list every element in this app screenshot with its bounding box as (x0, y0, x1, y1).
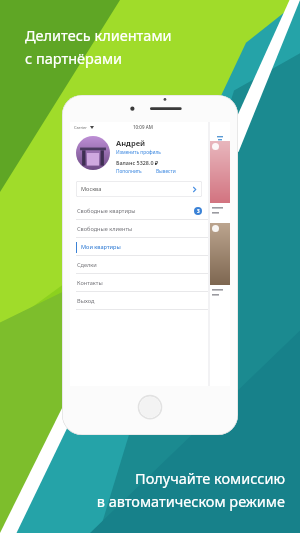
staticText: Свободные квартиры (77, 207, 136, 215)
staticText: Свободные клиенты (77, 225, 133, 233)
button[interactable]: Изменить профиль (116, 149, 161, 156)
staticText: 3 (197, 208, 200, 214)
staticText: Carrier (74, 125, 88, 130)
staticText: Сделки (77, 261, 97, 269)
staticText: Баланс 5328.0 ₽ (116, 159, 159, 166)
staticText: Выход (77, 297, 95, 305)
button[interactable]: Свободные клиенты (70, 220, 208, 238)
button[interactable]: Выход (70, 292, 208, 310)
button[interactable]: Вывести (156, 168, 176, 175)
staticText: Мои квартиры (81, 243, 121, 251)
staticText: Контакты (77, 279, 103, 287)
button[interactable]: Пополнить (116, 168, 142, 175)
staticText: 10:09 AM (133, 124, 153, 130)
staticText: в автоматическом режиме (96, 491, 285, 511)
button[interactable]: Свободные квартиры (70, 202, 208, 220)
button[interactable]: Сделки (70, 256, 208, 274)
staticText: Москва (81, 185, 102, 193)
staticText: Андрей (116, 138, 146, 148)
button[interactable]: Мои квартиры (70, 238, 208, 256)
button[interactable]: Москва (76, 181, 202, 197)
button[interactable]: Контакты (70, 274, 208, 292)
staticText: Получайте комиссию (134, 468, 285, 488)
staticText: Делитесь клиентами (25, 25, 172, 45)
button[interactable]: Аватар профиля (76, 136, 110, 170)
staticText: с партнёрами (25, 48, 123, 68)
